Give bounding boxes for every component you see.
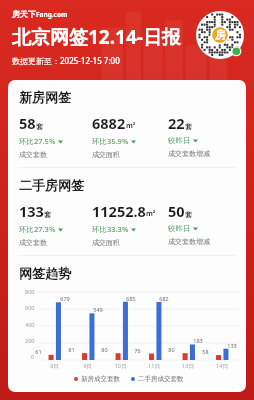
staticText: 14日 — [205, 362, 239, 370]
staticText: 新房网签 — [19, 89, 71, 105]
staticText: 成交面积 — [92, 238, 120, 247]
staticText: 套 — [44, 210, 51, 219]
staticText: 较昨日 — [168, 136, 191, 145]
staticText: 200 — [25, 337, 35, 344]
staticText: 环比35.9% — [92, 136, 129, 146]
staticText: 套 — [185, 210, 192, 219]
staticText: 新房成交套数 — [81, 375, 120, 383]
staticText: 81 — [63, 346, 80, 353]
staticText: 183 — [191, 337, 205, 344]
staticText: 房 — [215, 28, 226, 42]
staticText: 北京网签12.14-日报 — [12, 24, 181, 50]
staticText: 58 — [19, 113, 36, 133]
staticText: 9日 — [71, 362, 104, 370]
staticText: Fang.com — [36, 10, 68, 19]
staticText: 800 — [25, 288, 35, 295]
staticText: 58 — [197, 348, 214, 355]
staticText: 61 — [30, 348, 47, 355]
staticText: 22 — [168, 113, 185, 133]
staticText: 网签趋势 — [19, 265, 71, 281]
staticText: 成交套数 — [19, 150, 47, 159]
staticText: 682 — [157, 295, 171, 302]
staticText: 成交套数 — [19, 238, 47, 247]
button[interactable]: 新房成交套数 — [74, 375, 120, 383]
staticText: m² — [126, 121, 136, 131]
staticText: 133 — [19, 201, 44, 221]
staticText: 成交套数增减 — [168, 237, 210, 246]
staticText: 套 — [36, 122, 43, 131]
button[interactable]: 二手房成交套数 — [131, 375, 184, 383]
staticText: 685 — [124, 295, 138, 302]
button[interactable]: 二维码 — [196, 11, 244, 59]
staticText: 9日 — [38, 362, 71, 370]
staticText: 679 — [58, 295, 72, 302]
staticText: 二手房网签 — [19, 177, 84, 193]
staticText: 成交套数增减 — [168, 149, 210, 158]
staticText: 11日 — [137, 362, 171, 370]
staticText: 房天下 — [12, 9, 36, 19]
staticText: 600 — [25, 304, 35, 311]
staticText: 套 — [185, 122, 192, 131]
staticText: 0 — [31, 353, 35, 360]
staticText: 80 — [163, 346, 180, 353]
staticText: 10日 — [104, 362, 137, 370]
staticText: 环比27.5% — [19, 136, 56, 146]
staticText: 13日 — [171, 362, 205, 370]
staticText: 6882 — [92, 113, 126, 133]
staticText: 76 — [129, 347, 146, 354]
staticText: 80 — [96, 346, 113, 353]
staticText: 400 — [25, 321, 35, 328]
staticText: 11252.8 — [92, 201, 146, 221]
staticText: 50 — [168, 201, 185, 221]
staticText: 较昨日 — [168, 224, 191, 233]
staticText: 二手房成交套数 — [138, 375, 184, 383]
staticText: 成交面积 — [92, 150, 120, 159]
staticText: 133 — [225, 342, 239, 349]
staticText: m² — [146, 209, 156, 219]
staticText: 数据更新至：2025-12-15 7:00 — [12, 55, 120, 66]
staticText: 环比33.3% — [92, 224, 129, 234]
staticText: 549 — [91, 306, 105, 313]
staticText: 环比27.3% — [19, 224, 56, 234]
